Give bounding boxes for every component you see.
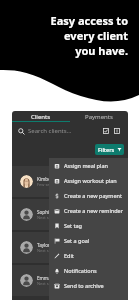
staticText: Assign meal plan xyxy=(64,162,108,169)
button[interactable]: Assign meal plan xyxy=(54,158,128,173)
staticText: Payments xyxy=(85,113,113,121)
button[interactable]: Assign workout plan xyxy=(54,173,128,188)
button[interactable]: Payments xyxy=(70,111,128,122)
button[interactable]: Set tag xyxy=(54,218,128,233)
button[interactable]: Edit xyxy=(54,248,128,263)
button[interactable]: Set a goal xyxy=(54,233,128,248)
button[interactable]: Clients xyxy=(12,111,70,122)
staticText: Notifications xyxy=(64,267,97,274)
staticText: Set tag xyxy=(64,222,82,229)
button[interactable]: Taylor B. xyxy=(20,232,128,263)
button[interactable]: Sophia M. xyxy=(20,199,128,230)
staticText: Taylor B. xyxy=(37,242,56,248)
staticText: Assign workout plan xyxy=(64,177,117,184)
button[interactable]: Notifications xyxy=(54,263,128,278)
button[interactable]: Kimberly xyxy=(20,166,128,197)
staticText: Filters xyxy=(98,146,115,153)
staticText: Easy access to every client you have. xyxy=(0,13,128,58)
staticText: Next session xyxy=(37,248,61,253)
staticText: Kimberly xyxy=(37,176,57,182)
staticText: Set a goal xyxy=(64,237,90,244)
staticText: Create a new reminder xyxy=(64,207,123,214)
staticText: Next session xyxy=(37,281,61,286)
staticText: Emma Lee xyxy=(37,275,60,281)
staticText: Search clients... xyxy=(28,127,72,135)
button[interactable]: Send to archive xyxy=(54,278,128,293)
staticText: Next session xyxy=(37,215,61,220)
button[interactable]: Emma Lee xyxy=(20,265,128,296)
staticText: Few sessions xyxy=(37,182,62,187)
button[interactable]: Create a new reminder xyxy=(54,203,128,218)
staticText: Send to archive xyxy=(64,282,104,289)
staticText: Sophia M. xyxy=(37,209,59,215)
button[interactable]: Sort xyxy=(113,127,121,135)
staticText: Create a new payment xyxy=(64,192,122,199)
button[interactable]: Create a new payment xyxy=(54,188,128,203)
staticText: Edit xyxy=(64,252,74,259)
staticText: Clients xyxy=(31,113,51,121)
button[interactable]: Filters xyxy=(95,144,124,155)
button[interactable]: Select xyxy=(102,127,110,135)
